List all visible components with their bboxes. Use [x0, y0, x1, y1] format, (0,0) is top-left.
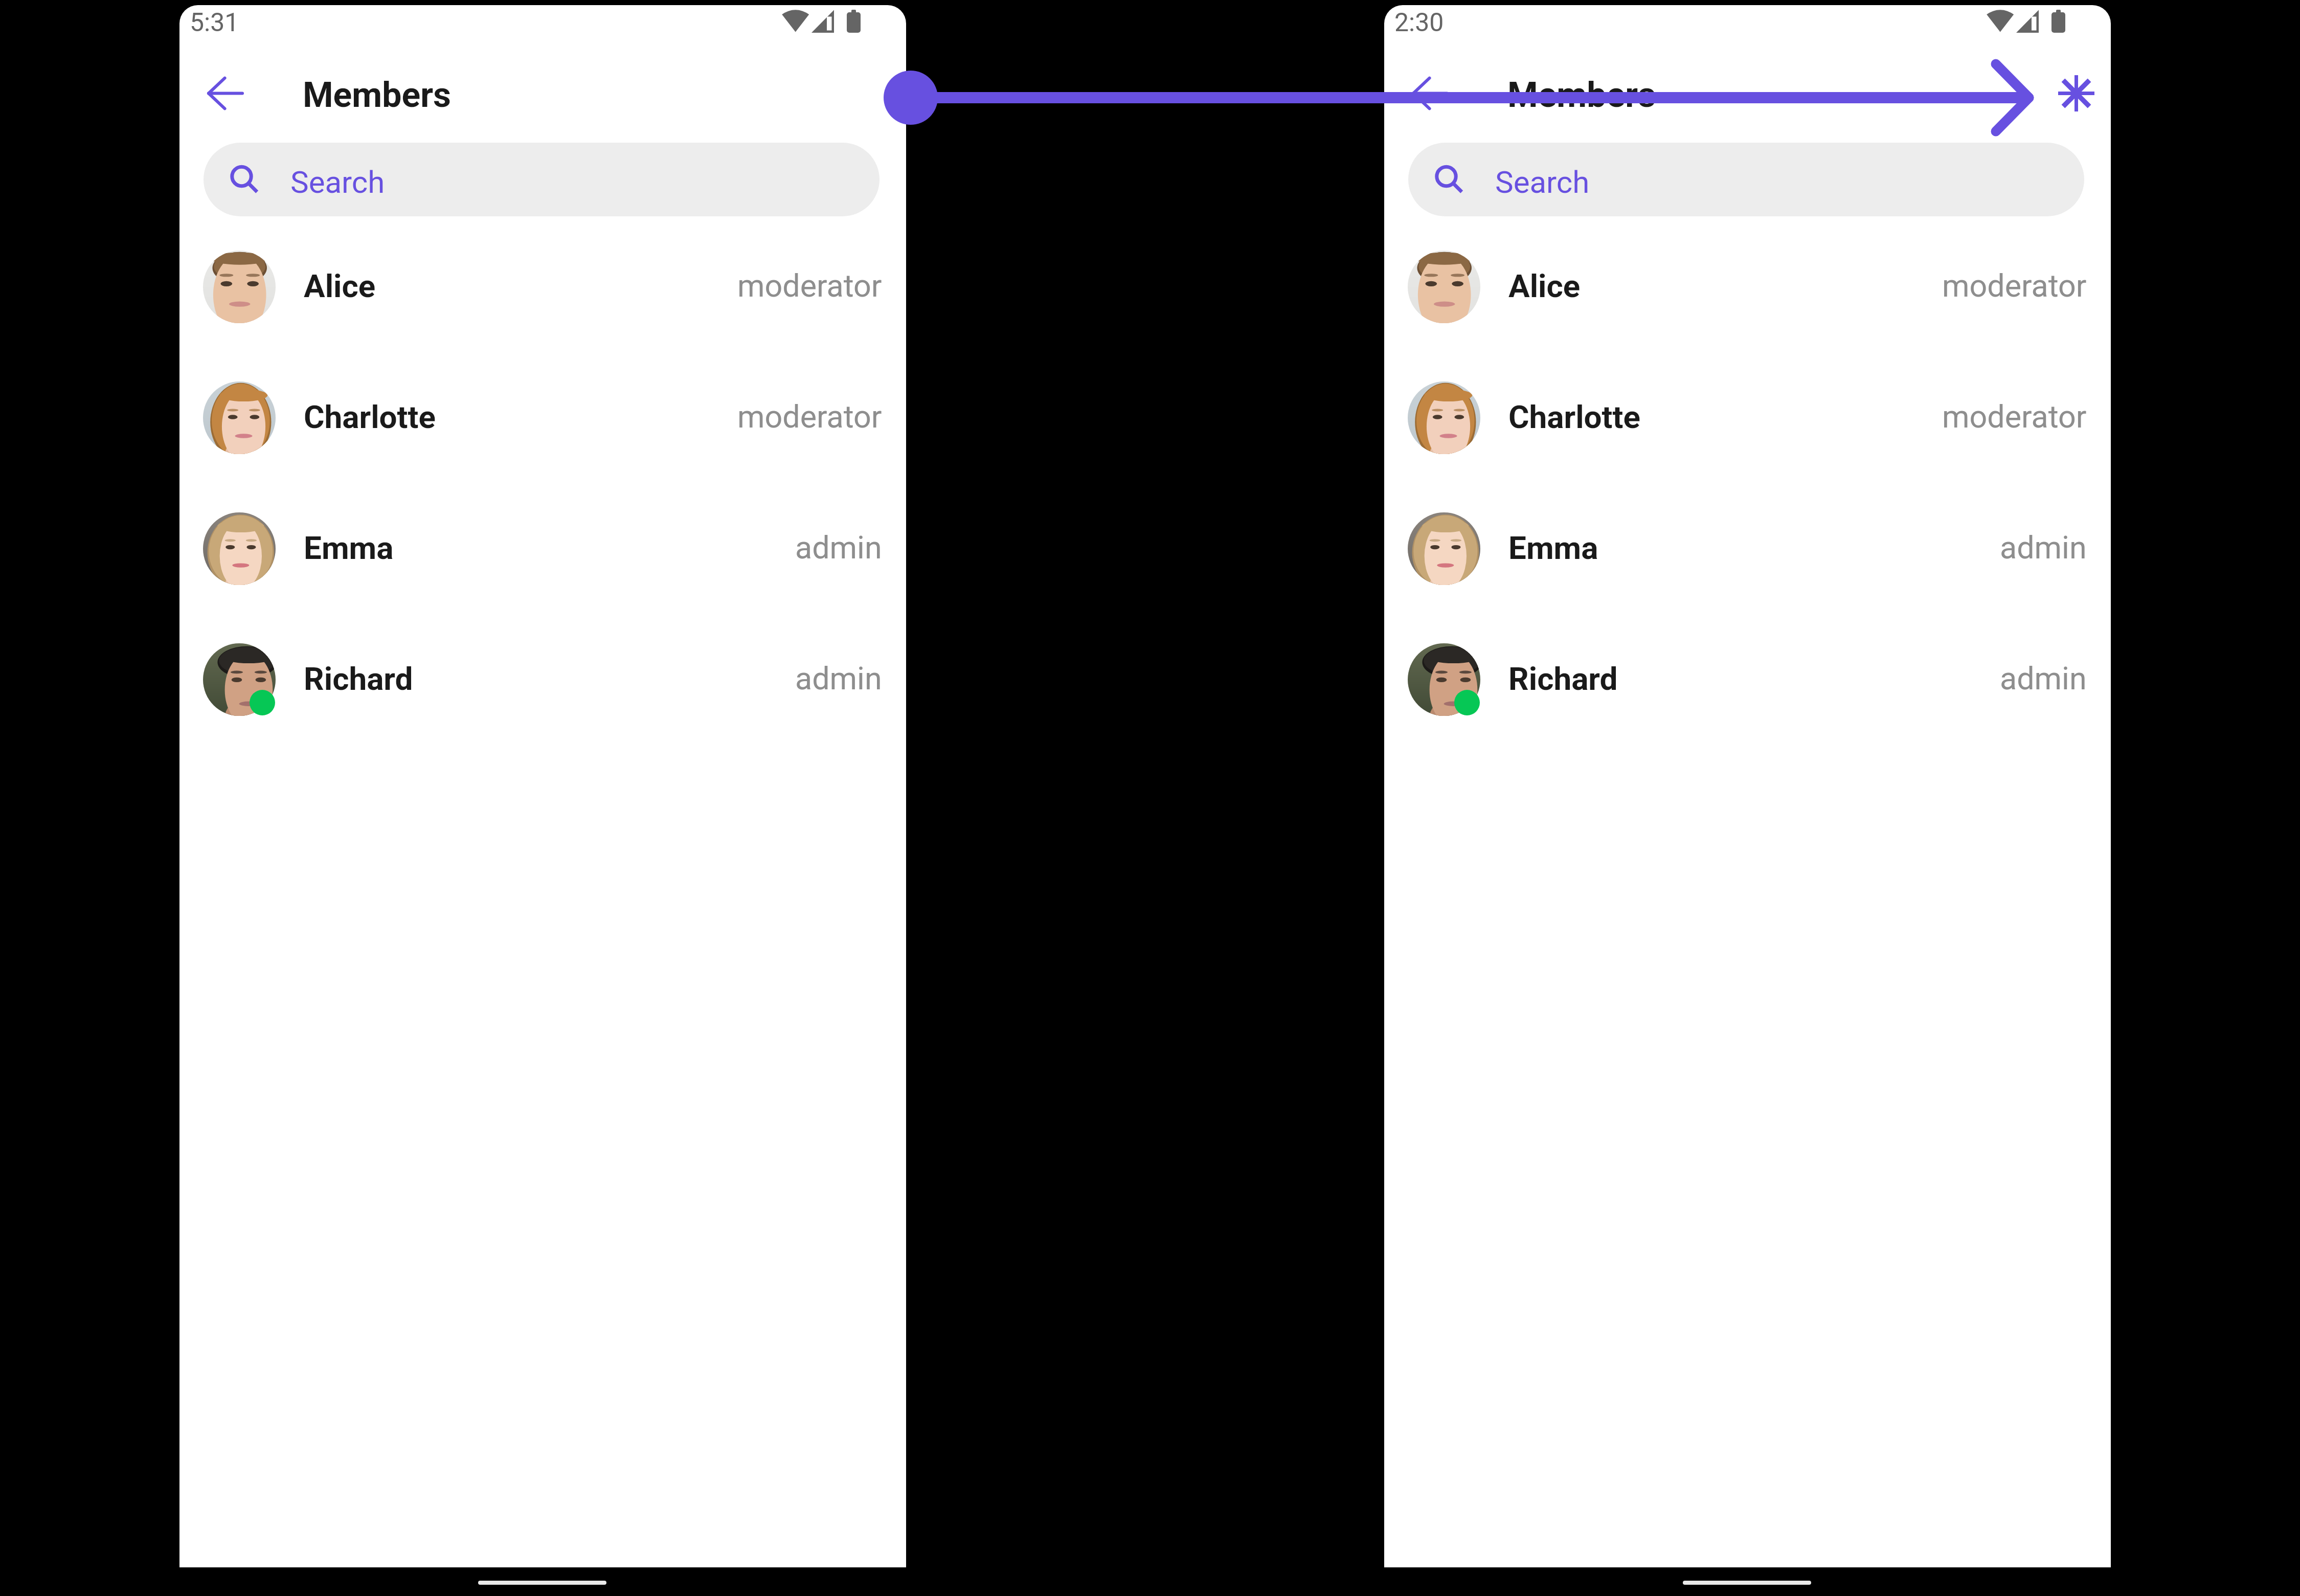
staticText: admin	[2000, 660, 2087, 696]
staticText: Richard	[304, 660, 413, 698]
button[interactable]: Richard	[179, 614, 906, 745]
staticText: Members	[1507, 75, 1656, 116]
staticText: admin	[795, 529, 882, 566]
staticText: moderator	[737, 398, 882, 435]
button[interactable]: Charlotte	[179, 352, 906, 483]
button[interactable]: Emma	[179, 483, 906, 614]
button[interactable]: Navigate back	[193, 61, 258, 125]
button[interactable]: Search	[204, 143, 880, 216]
staticText: moderator	[737, 267, 882, 304]
staticText: 5:31	[190, 8, 239, 38]
button[interactable]: Alice	[179, 221, 906, 352]
button[interactable]: Navigate back	[1398, 61, 1462, 125]
button[interactable]: Alice	[1384, 221, 2111, 352]
staticText: Richard	[1508, 660, 1618, 698]
staticText: admin	[795, 660, 882, 696]
staticText: Members	[303, 75, 451, 116]
staticText: 2:30	[1394, 8, 1444, 38]
staticText: Alice	[1508, 267, 1581, 305]
button[interactable]: Freeze list	[2044, 61, 2108, 125]
staticText: Emma	[1508, 529, 1598, 567]
staticText: Emma	[304, 529, 394, 567]
staticText: Search	[1495, 164, 1590, 200]
button[interactable]: Emma	[1384, 483, 2111, 614]
staticText: Charlotte	[304, 398, 436, 436]
button[interactable]: Search	[1408, 143, 2084, 216]
staticText: Alice	[304, 267, 376, 305]
staticText: moderator	[1942, 398, 2087, 435]
staticText: admin	[2000, 529, 2087, 566]
staticText: Search	[290, 164, 385, 200]
button[interactable]: Charlotte	[1384, 352, 2111, 483]
button[interactable]: Richard	[1384, 614, 2111, 745]
staticText: moderator	[1942, 267, 2087, 304]
staticText: Charlotte	[1508, 398, 1641, 436]
